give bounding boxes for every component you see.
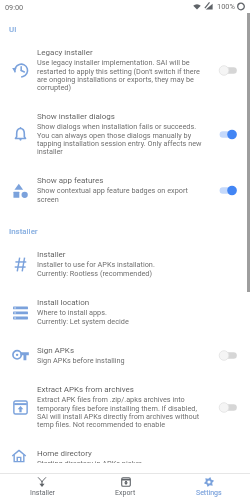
button[interactable]: Toggle off: [219, 401, 239, 414]
button[interactable]: Export: [84, 474, 167, 500]
button[interactable]: Home directory: [0, 439, 250, 473]
staticText: Home directory: [37, 449, 92, 458]
staticText: Show contextual app feature badges on ex…: [37, 186, 209, 204]
staticText: Show dialogs when installation fails or …: [37, 122, 209, 156]
staticText: UI: [9, 25, 17, 34]
button[interactable]: Install location: [0, 288, 250, 336]
button[interactable]: Sign APKs: [0, 336, 250, 375]
button[interactable]: Legacy installer: [0, 38, 250, 102]
staticText: Export: [115, 489, 136, 497]
staticText: 100%: [217, 2, 235, 11]
staticText: Where to install apps. Currently: Let sy…: [37, 308, 129, 326]
staticText: Legacy installer: [37, 48, 93, 57]
button[interactable]: Installer: [0, 240, 250, 288]
staticText: 09:00: [5, 3, 24, 12]
button[interactable]: Installer: [0, 474, 84, 500]
staticText: Installer: [30, 489, 55, 497]
staticText: Settings: [196, 489, 222, 497]
staticText: Extract APKs from archives: [37, 385, 134, 394]
staticText: Sign APKs before installing: [37, 356, 125, 365]
button[interactable]: Toggle off: [219, 349, 239, 362]
button[interactable]: Extract APKs from archives: [0, 375, 250, 439]
staticText: Installer: [9, 227, 38, 236]
staticText: Use legacy installer implementation. SAI…: [37, 58, 209, 92]
button[interactable]: Toggle on: [219, 184, 239, 197]
button[interactable]: Toggle off: [219, 64, 239, 77]
staticText: Installer to use for APKs installation. …: [37, 260, 155, 278]
staticText: Extract APK files from .zip/.apks archiv…: [37, 395, 209, 429]
staticText: Sign APKs: [37, 346, 75, 355]
button[interactable]: Show app features: [0, 166, 250, 214]
staticText: Installer: [37, 250, 66, 259]
staticText: Show installer dialogs: [37, 112, 115, 121]
button[interactable]: Settings: [167, 474, 250, 500]
staticText: Install location: [37, 298, 90, 307]
staticText: Show app features: [37, 176, 104, 185]
button[interactable]: Toggle on: [219, 128, 239, 141]
staticText: Starting directory in APKs picker Curren…: [37, 459, 142, 463]
button[interactable]: Show installer dialogs: [0, 102, 250, 166]
